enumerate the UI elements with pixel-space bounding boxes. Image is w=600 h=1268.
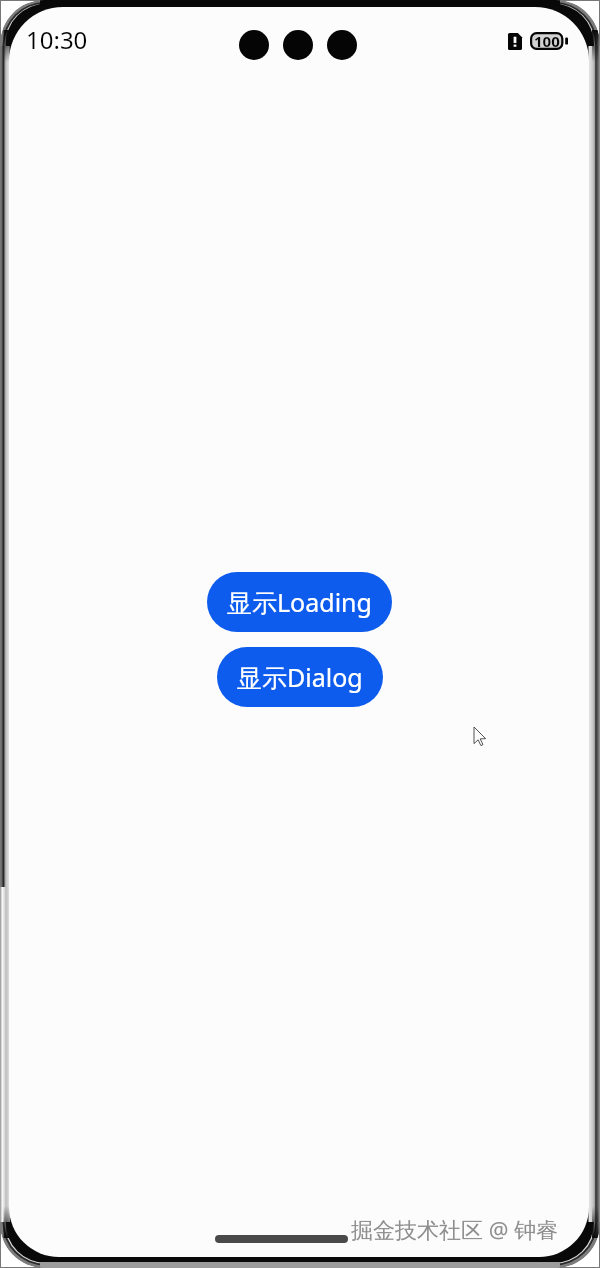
- staticText: 10:30: [26, 23, 88, 56]
- staticText: 掘金技术社区 @ 钟睿: [351, 1214, 559, 1244]
- staticText: 显示Loading: [227, 585, 372, 619]
- staticText: 100: [534, 31, 560, 51]
- button[interactable]: 显示Loading: [207, 572, 392, 632]
- button[interactable]: 显示Dialog: [217, 647, 383, 707]
- staticText: 显示Dialog: [237, 660, 363, 694]
